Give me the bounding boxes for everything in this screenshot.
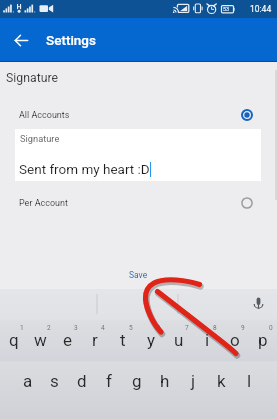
button[interactable]: 5 (109, 320, 137, 362)
staticText: o (230, 330, 240, 350)
staticText: e (63, 330, 73, 350)
button[interactable]: l (235, 362, 263, 404)
button[interactable]: 3 (54, 320, 81, 362)
button[interactable]: 1 (0, 320, 27, 362)
staticText: p (258, 330, 268, 350)
staticText: d (77, 371, 87, 391)
staticText: f (106, 371, 112, 391)
staticText: q (9, 330, 19, 350)
staticText: 53 (223, 6, 230, 12)
button[interactable]: 8 (193, 320, 221, 362)
staticText: 3 (74, 324, 78, 332)
button[interactable]: 7 (165, 320, 193, 362)
button[interactable]: f (95, 362, 123, 404)
staticText: j (191, 371, 196, 391)
button[interactable]: s (41, 362, 68, 404)
staticText: t (120, 330, 126, 350)
staticText: g (132, 371, 142, 391)
staticText: Sent from my heart :D (19, 161, 150, 177)
staticText: Settings (46, 32, 96, 48)
staticText: 4 (101, 324, 105, 332)
button[interactable]: 4 (81, 320, 109, 362)
staticText: k (217, 371, 226, 391)
staticText: u (174, 330, 184, 350)
button[interactable]: j (179, 362, 207, 404)
staticText: h (160, 371, 170, 391)
staticText: a (23, 371, 33, 391)
button[interactable]: 6 (137, 320, 165, 362)
button[interactable]: k (207, 362, 235, 404)
button[interactable]: 0 (249, 320, 277, 362)
button[interactable]: h (151, 362, 179, 404)
staticText: Signature (20, 133, 60, 144)
staticText: 8 (213, 324, 217, 332)
button[interactable]: Save (123, 266, 154, 284)
staticText: 2 (47, 324, 51, 332)
staticText: Signature (6, 71, 59, 85)
button[interactable]: Per Account (0, 190, 277, 216)
staticText: 10:44 (250, 4, 272, 14)
staticText: 0 (269, 324, 273, 332)
staticText: r (92, 330, 98, 350)
staticText: All Accounts (19, 110, 70, 121)
staticText: 6 (157, 324, 161, 332)
button[interactable]: d (68, 362, 95, 404)
button[interactable]: Back (0, 18, 42, 62)
staticText: 1 (20, 324, 24, 332)
staticText: y (147, 330, 156, 350)
staticText: i (205, 330, 210, 350)
staticText: Per Account (19, 198, 68, 209)
staticText: 5 (129, 324, 133, 332)
button[interactable]: Voice input (249, 294, 267, 312)
staticText: w (34, 330, 47, 350)
button[interactable]: a (14, 362, 41, 404)
button[interactable]: 2 (27, 320, 54, 362)
staticText: Save (129, 270, 148, 280)
staticText: 7 (185, 324, 189, 332)
button[interactable]: g (123, 362, 151, 404)
staticText: 9 (241, 324, 245, 332)
button[interactable]: All Accounts (0, 102, 277, 128)
staticText: l (247, 371, 252, 391)
staticText: s (50, 371, 59, 391)
button[interactable]: 9 (221, 320, 249, 362)
